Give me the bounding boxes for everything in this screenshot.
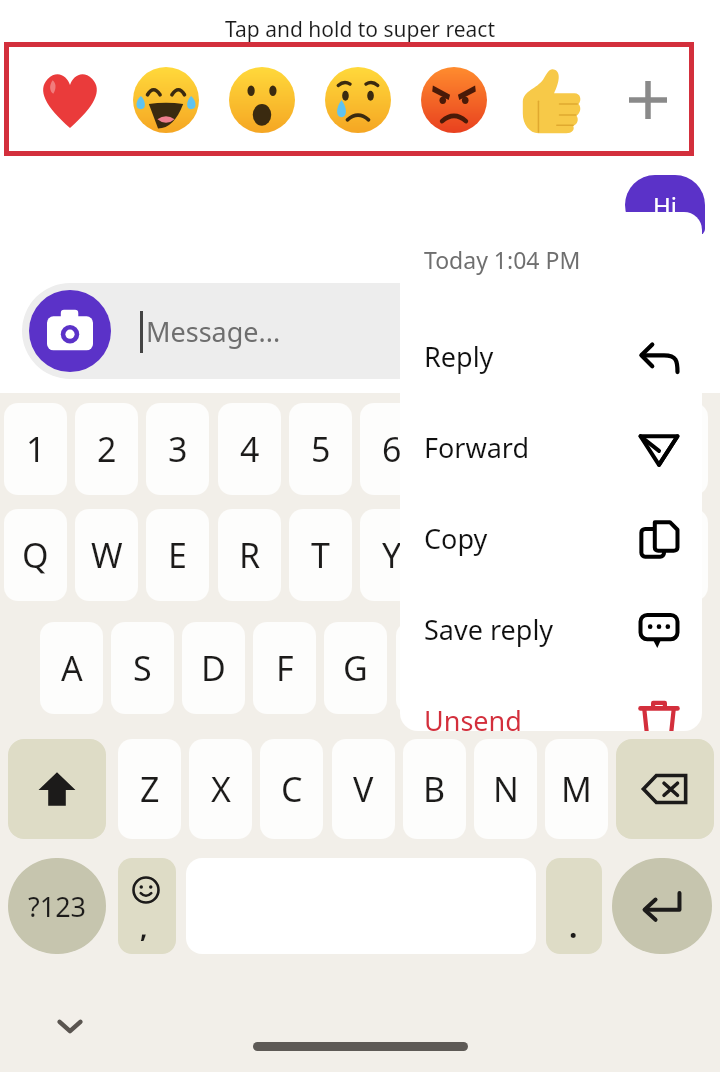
button[interactable]: D: [182, 622, 245, 714]
staticText: M: [561, 766, 592, 812]
button[interactable]: V: [332, 739, 395, 839]
button[interactable]: Unsend: [400, 675, 702, 731]
button[interactable]: 8: [502, 403, 565, 495]
button[interactable]: T: [289, 509, 352, 601]
button[interactable]: Reply: [400, 311, 702, 402]
button[interactable]: 1: [4, 403, 67, 495]
button[interactable]: J: [467, 622, 530, 714]
button[interactable]: Q: [4, 509, 67, 601]
staticText: G: [343, 645, 368, 691]
button[interactable]: H: [396, 622, 459, 714]
staticText: Message...: [146, 313, 281, 350]
staticText: 5: [311, 426, 331, 472]
button[interactable]: Sad reaction: [310, 60, 406, 140]
button[interactable]: Collapse keyboard: [44, 1000, 96, 1052]
button[interactable]: F: [253, 622, 316, 714]
button[interactable]: 4: [218, 403, 281, 495]
staticText: Unsend: [424, 702, 522, 731]
staticText: B: [423, 766, 446, 812]
button[interactable]: P: [645, 509, 708, 601]
staticText: E: [168, 532, 187, 578]
button[interactable]: S: [111, 622, 174, 714]
button[interactable]: U: [431, 509, 494, 601]
button[interactable]: More reactions: [598, 60, 698, 140]
button[interactable]: Camera: [29, 290, 111, 372]
button[interactable]: Shift: [8, 739, 106, 839]
staticText: Forward: [424, 429, 530, 466]
button[interactable]: C: [260, 739, 323, 839]
button[interactable]: A: [40, 622, 103, 714]
button[interactable]: Save reply: [400, 584, 702, 675]
staticText: 4: [240, 426, 260, 472]
staticText: W: [91, 532, 123, 578]
staticText: 2: [97, 426, 117, 472]
button[interactable]: Haha reaction: [118, 60, 214, 140]
staticText: 6: [382, 426, 402, 472]
button[interactable]: N: [474, 739, 537, 839]
staticText: Y: [382, 532, 402, 578]
staticText: ?123: [28, 888, 87, 925]
button[interactable]: Wow reaction: [214, 60, 310, 140]
button[interactable]: Enter: [612, 858, 712, 954]
staticText: .: [569, 906, 578, 947]
button[interactable]: Camera: [22, 283, 642, 379]
button[interactable]: Forward: [400, 402, 702, 493]
button[interactable]: Backspace: [616, 739, 714, 839]
button[interactable]: 7: [431, 403, 494, 495]
button[interactable]: E: [146, 509, 209, 601]
button[interactable]: Angry reaction: [406, 60, 502, 140]
staticText: Copy: [424, 520, 488, 557]
button[interactable]: 3: [146, 403, 209, 495]
button[interactable]: K: [538, 622, 601, 714]
staticText: N: [493, 766, 519, 812]
staticText: P: [666, 532, 687, 578]
staticText: Q: [22, 532, 49, 578]
button[interactable]: W: [75, 509, 138, 601]
button[interactable]: M: [545, 739, 608, 839]
button[interactable]: Love reaction: [22, 60, 118, 140]
button[interactable]: Emoji: [118, 858, 176, 954]
button[interactable]: 0: [645, 403, 708, 495]
button[interactable]: R: [218, 509, 281, 601]
staticText: T: [311, 532, 330, 578]
button[interactable]: ?123: [8, 858, 106, 954]
button[interactable]: Z: [118, 739, 181, 839]
staticText: D: [201, 645, 226, 691]
button[interactable]: 2: [75, 403, 138, 495]
staticText: R: [239, 532, 261, 578]
staticText: Reply: [424, 338, 494, 375]
button[interactable]: Like reaction: [502, 60, 598, 140]
staticText: Z: [140, 766, 160, 812]
button[interactable]: B: [403, 739, 466, 839]
staticText: 8: [524, 426, 544, 472]
button[interactable]: Copy: [400, 493, 702, 584]
button[interactable]: Y: [360, 509, 423, 601]
button[interactable]: 5: [289, 403, 352, 495]
staticText: C: [281, 766, 303, 812]
staticText: U: [450, 532, 475, 578]
staticText: Save reply: [424, 611, 554, 648]
staticText: ,: [140, 910, 148, 945]
staticText: Hi: [653, 189, 677, 222]
button[interactable]: L: [609, 622, 672, 714]
staticText: A: [61, 645, 83, 691]
staticText: 7: [453, 426, 473, 472]
staticText: X: [211, 766, 231, 812]
button[interactable]: 6: [360, 403, 423, 495]
staticText: 3: [168, 426, 188, 472]
staticText: V: [353, 766, 374, 812]
button[interactable]: X: [189, 739, 252, 839]
button[interactable]: .: [546, 858, 602, 954]
staticText: F: [276, 645, 294, 691]
button[interactable]: G: [324, 622, 387, 714]
